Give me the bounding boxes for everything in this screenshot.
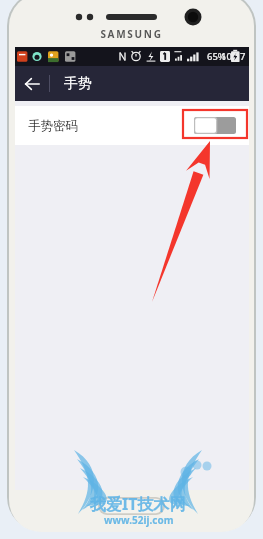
- staticText: 我爱IT技术网: [90, 493, 186, 515]
- staticText: 10:17: [221, 50, 246, 63]
- button[interactable]: Back: [15, 67, 49, 101]
- staticText: www.52ij.com: [104, 513, 174, 527]
- staticText: 65%: [207, 50, 226, 63]
- staticText: 手势密码: [28, 118, 78, 134]
- button[interactable]: 手势密码: [15, 106, 249, 145]
- staticText: SAMSUNG: [0, 27, 263, 41]
- staticText: 手势: [64, 75, 92, 93]
- button[interactable]: Gesture password switch, off: [194, 117, 236, 134]
